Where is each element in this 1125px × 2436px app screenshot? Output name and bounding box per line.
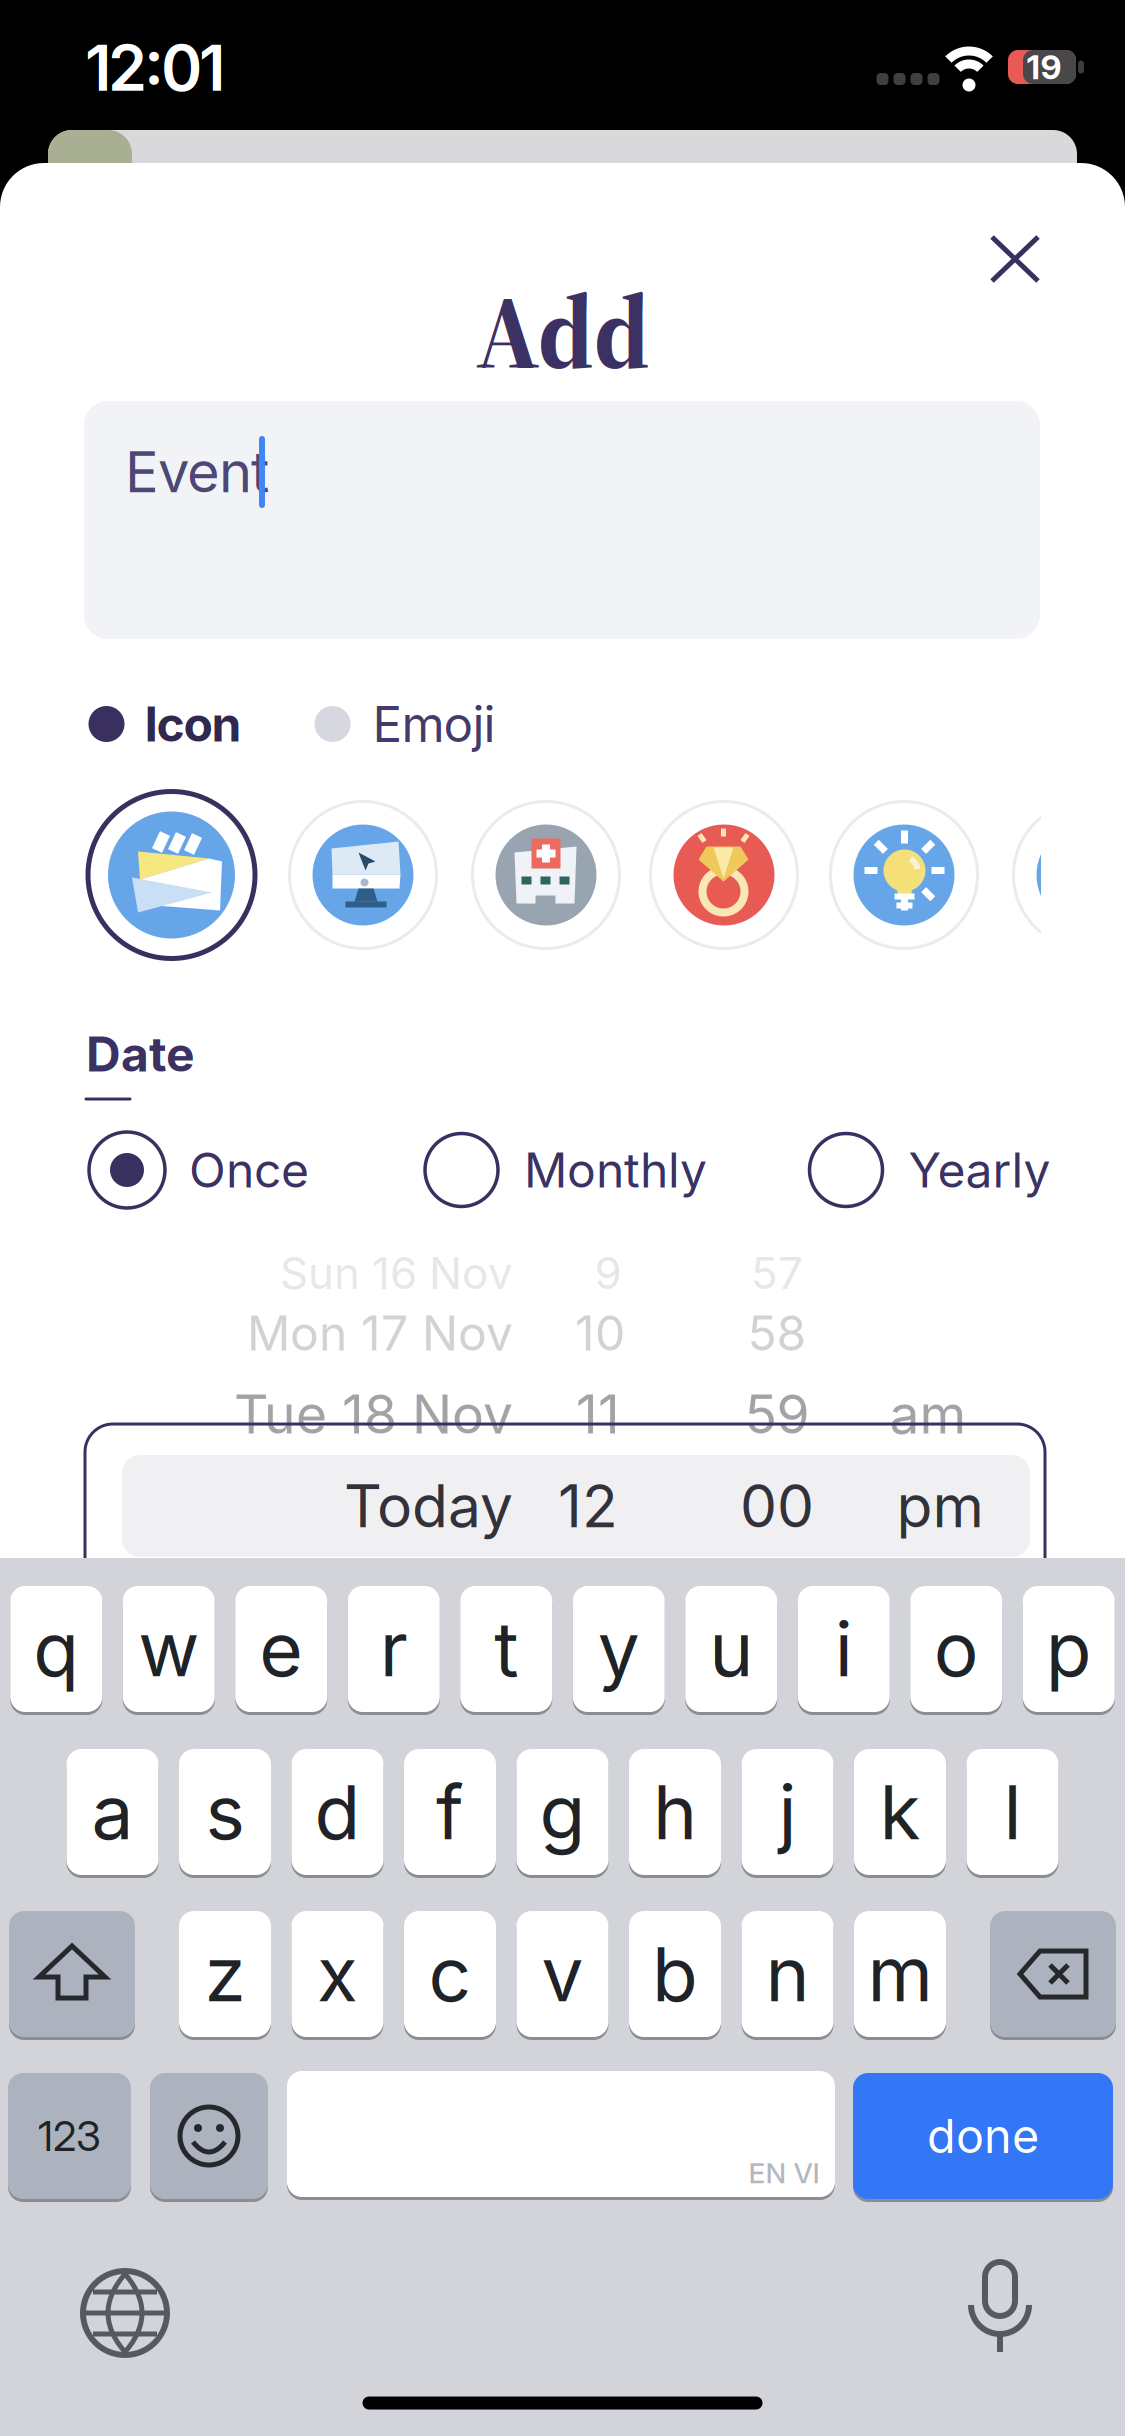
- staticText: Monthly: [524, 1141, 707, 1199]
- button[interactable]: v: [516, 1909, 608, 2039]
- button[interactable]: Event title: [84, 401, 1040, 639]
- staticText: e: [259, 1604, 303, 1694]
- button[interactable]: Close: [972, 217, 1058, 301]
- button[interactable]: r: [348, 1584, 440, 1714]
- staticText: Date: [86, 1025, 195, 1083]
- staticText: m: [867, 1929, 932, 2019]
- button[interactable]: x: [291, 1909, 383, 2039]
- staticText: done: [927, 2108, 1039, 2164]
- staticText: 10: [575, 1304, 625, 1362]
- button[interactable]: i: [798, 1584, 890, 1714]
- button[interactable]: Next keyboard: [83, 2271, 167, 2355]
- button[interactable]: Computer icon: [288, 800, 438, 950]
- button[interactable]: w: [123, 1584, 215, 1714]
- staticText: 11: [576, 1382, 620, 1446]
- staticText: EN VI: [748, 2156, 819, 2190]
- staticText: f: [436, 1767, 464, 1857]
- button[interactable]: Emoji: [150, 2071, 268, 2201]
- staticText: Emoji: [372, 694, 495, 754]
- staticText: u: [709, 1604, 753, 1694]
- button[interactable]: Once: [89, 1132, 309, 1208]
- staticText: Today: [344, 1470, 513, 1541]
- button[interactable]: j: [741, 1747, 833, 1877]
- staticText: c: [428, 1929, 471, 2019]
- staticText: t: [494, 1604, 518, 1694]
- button[interactable]: Dictate: [964, 2263, 1036, 2357]
- staticText: Sun 16 Nov: [280, 1246, 513, 1300]
- staticText: b: [652, 1929, 698, 2019]
- staticText: v: [541, 1929, 583, 2019]
- staticText: Icon: [144, 695, 241, 753]
- staticText: k: [879, 1767, 920, 1857]
- button[interactable]: Emoji: [304, 684, 505, 764]
- staticText: 59: [744, 1382, 809, 1446]
- staticText: 19: [1026, 47, 1061, 87]
- button[interactable]: Space: [287, 2071, 835, 2201]
- button[interactable]: z: [179, 1909, 271, 2039]
- button[interactable]: done: [853, 2071, 1113, 2201]
- staticText: i: [835, 1604, 853, 1694]
- button[interactable]: Party icon: [85, 789, 257, 961]
- button[interactable]: g: [516, 1747, 608, 1877]
- staticText: 57: [751, 1246, 803, 1300]
- button[interactable]: Monthly: [425, 1133, 707, 1206]
- button[interactable]: Shift: [9, 1909, 135, 2039]
- staticText: l: [1003, 1767, 1021, 1857]
- staticText: 9: [594, 1246, 621, 1300]
- staticText: j: [778, 1767, 796, 1857]
- staticText: d: [314, 1767, 360, 1857]
- staticText: am: [889, 1382, 966, 1446]
- button[interactable]: Hospital icon: [471, 800, 621, 950]
- staticText: h: [653, 1767, 697, 1857]
- button[interactable]: 123: [8, 2071, 131, 2201]
- staticText: 58: [747, 1304, 806, 1362]
- staticText: pm: [896, 1470, 983, 1541]
- button[interactable]: f: [404, 1747, 496, 1877]
- staticText: 12: [558, 1470, 618, 1541]
- button[interactable]: Delete: [990, 1909, 1116, 2039]
- button[interactable]: q: [10, 1584, 102, 1714]
- staticText: Once: [189, 1141, 309, 1199]
- staticText: y: [598, 1604, 640, 1694]
- button[interactable]: Yearly: [809, 1133, 1050, 1206]
- staticText: Yearly: [908, 1141, 1050, 1199]
- staticText: 123: [38, 2111, 101, 2161]
- button[interactable]: k: [854, 1747, 946, 1877]
- staticText: Add: [475, 260, 650, 402]
- button[interactable]: More icons: [1012, 800, 1125, 950]
- button[interactable]: e: [235, 1584, 327, 1714]
- staticText: a: [91, 1767, 133, 1857]
- button[interactable]: s: [179, 1747, 271, 1877]
- button[interactable]: Icon: [78, 685, 251, 763]
- button[interactable]: m: [854, 1909, 946, 2039]
- button[interactable]: n: [741, 1909, 833, 2039]
- button[interactable]: d: [291, 1747, 383, 1877]
- button[interactable]: Idea icon: [829, 800, 979, 950]
- button[interactable]: a: [66, 1747, 158, 1877]
- staticText: x: [317, 1929, 358, 2019]
- staticText: o: [934, 1604, 979, 1694]
- staticText: Tue 18 Nov: [234, 1382, 513, 1446]
- staticText: 12:01: [85, 30, 225, 106]
- button[interactable]: c: [404, 1909, 496, 2039]
- staticText: p: [1046, 1604, 1092, 1694]
- button[interactable]: t: [460, 1584, 552, 1714]
- button[interactable]: h: [629, 1747, 721, 1877]
- button[interactable]: Ring icon: [649, 800, 799, 950]
- button[interactable]: b: [629, 1909, 721, 2039]
- button[interactable]: u: [685, 1584, 777, 1714]
- staticText: Event: [125, 438, 269, 506]
- staticText: 00: [740, 1470, 814, 1541]
- button[interactable]: o: [910, 1584, 1002, 1714]
- button[interactable]: y: [573, 1584, 665, 1714]
- button[interactable]: p: [1023, 1584, 1115, 1714]
- staticText: z: [204, 1929, 245, 2019]
- staticText: Mon 17 Nov: [247, 1304, 513, 1362]
- staticText: g: [539, 1767, 585, 1857]
- staticText: s: [205, 1767, 244, 1857]
- button[interactable]: l: [966, 1747, 1058, 1877]
- staticText: n: [765, 1929, 809, 2019]
- staticText: r: [380, 1604, 408, 1694]
- staticText: q: [33, 1604, 79, 1694]
- staticText: w: [138, 1604, 199, 1694]
